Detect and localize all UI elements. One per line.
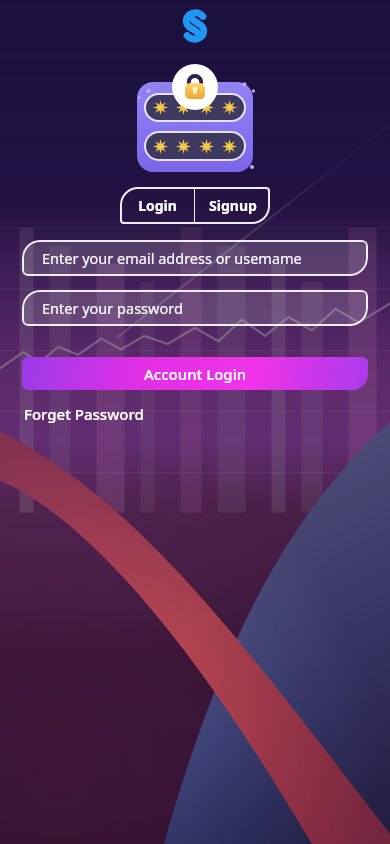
staticText: Enter your email address or usemame [42,248,302,268]
button[interactable]: Account Login [22,357,368,390]
button[interactable]: Signup [195,187,270,224]
staticText: Signup [209,196,257,215]
button[interactable]: Enter your email address or usemame [22,240,368,276]
staticText: Enter your password [42,298,183,318]
button[interactable]: Forget Password [24,402,144,426]
staticText: Account Login [144,364,247,384]
button[interactable]: Enter your password [22,290,368,326]
button[interactable]: Login [120,187,194,224]
staticText: Login [138,196,177,215]
